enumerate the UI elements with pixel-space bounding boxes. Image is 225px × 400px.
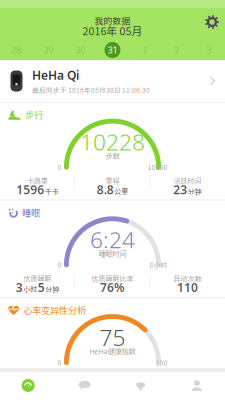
staticText: 23 [173, 182, 187, 198]
staticText: 1 [142, 44, 147, 56]
staticText: 睡眠时间 [98, 248, 126, 259]
staticText: 3 [16, 279, 23, 295]
button[interactable]: 我的 [169, 371, 225, 400]
staticText: 公里 [114, 186, 128, 196]
staticText: 2016年 05月 [82, 23, 142, 38]
staticText: 最后同步于 2016年05月30日 11:06:30 [32, 85, 150, 95]
button[interactable]: 30 [64, 41, 96, 59]
button[interactable]: 29 [32, 41, 64, 59]
staticText: 1596 [16, 182, 44, 198]
staticText: 千卡 [45, 186, 59, 196]
button[interactable]: 设置 [199, 9, 225, 35]
staticText: 8.8 [97, 182, 114, 198]
staticText: 3 [206, 44, 211, 56]
staticText: 分钟 [45, 284, 59, 294]
button[interactable]: 31 [96, 41, 128, 59]
staticText: 75 [99, 322, 125, 352]
staticText: HeHa Qi [32, 67, 79, 83]
staticText: 6:24 [90, 224, 135, 254]
staticText: 0 [57, 163, 61, 172]
staticText: 10228 [80, 127, 145, 157]
staticText: 里程 [105, 176, 119, 186]
staticText: 优质睡眠 [23, 273, 51, 283]
staticText: 小时 [23, 284, 37, 294]
staticText: 异动次数 [173, 273, 201, 283]
staticText: 31 [107, 44, 117, 56]
button[interactable]: 发现 [112, 371, 169, 400]
staticText: HeHa健康指数 [89, 346, 135, 356]
staticText: 0 [57, 358, 61, 367]
button[interactable]: 28 [0, 41, 32, 59]
staticText: 76% [100, 279, 125, 295]
staticText: 2 [174, 44, 179, 56]
staticText: 我的数据 [94, 14, 130, 27]
button[interactable]: 数据 [0, 371, 56, 400]
staticText: 步行 [25, 108, 43, 121]
staticText: 分钟 [188, 186, 202, 196]
staticText: 28 [11, 44, 21, 56]
staticText: 0 [57, 260, 61, 269]
button[interactable]: 消息 [56, 371, 112, 400]
staticText: 100 [155, 358, 167, 367]
staticText: 心率变异性分析 [23, 303, 86, 317]
staticText: 优质睡眠比率 [91, 273, 133, 283]
staticText: 10000 [147, 162, 167, 172]
staticText: 8小时 [149, 260, 167, 270]
staticText: 30 [75, 44, 85, 56]
staticText: 步数 [105, 150, 119, 161]
staticText: 110 [177, 279, 198, 295]
staticText: 5 [38, 279, 45, 295]
staticText: 卡路里 [27, 176, 48, 186]
staticText: 睡眠 [22, 205, 40, 219]
staticText: 29 [43, 44, 53, 56]
button[interactable]: HeHa Qi [0, 60, 225, 102]
staticText: 活跃时间 [173, 176, 201, 186]
